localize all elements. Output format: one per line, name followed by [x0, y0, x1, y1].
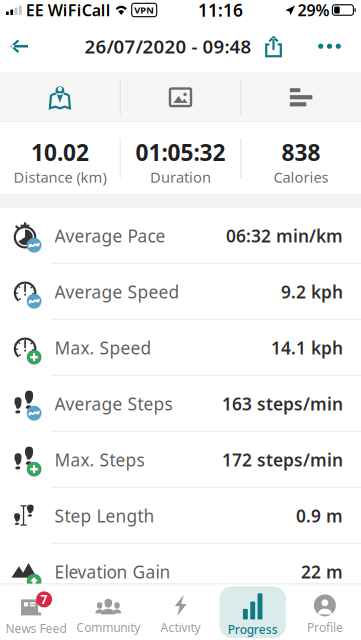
staticText: 22 m	[301, 560, 343, 583]
staticText: EE WiFiCall	[26, 0, 111, 21]
staticText: Activity	[160, 619, 200, 635]
staticText: Max. Steps	[54, 448, 144, 471]
button[interactable]: Step Length	[0, 488, 361, 544]
button[interactable]: Average Speed	[0, 264, 361, 320]
button[interactable]: Max. Steps	[0, 432, 361, 488]
button[interactable]: Map	[0, 73, 120, 121]
staticText: Community	[76, 619, 140, 635]
staticText: 26/07/2020 - 09:48	[84, 34, 251, 59]
staticText: Duration	[150, 167, 211, 187]
button[interactable]: Average Steps	[0, 376, 361, 432]
staticText: Elevation Gain	[54, 560, 170, 583]
staticText: 10.02	[31, 137, 89, 167]
staticText: Profile	[307, 619, 343, 635]
button[interactable]: Splits	[241, 73, 361, 121]
staticText: 7	[41, 591, 48, 607]
staticText: 14.1 kph	[271, 336, 343, 359]
staticText: 11:16	[198, 0, 243, 21]
staticText: Max. Speed	[54, 336, 151, 359]
staticText: Average Pace	[54, 224, 165, 247]
button[interactable]: Photos	[121, 73, 240, 121]
staticText: 01:05:32	[135, 137, 225, 167]
button[interactable]: More	[309, 24, 361, 68]
button[interactable]: Activity	[144, 584, 217, 640]
staticText: 9.2 kph	[281, 280, 343, 303]
staticText: 163 steps/min	[222, 392, 343, 415]
staticText: 06:32 min/km	[226, 224, 343, 247]
staticText: Average Steps	[54, 392, 172, 415]
staticText: 29%	[297, 0, 329, 21]
button[interactable]: Share	[264, 24, 309, 68]
button[interactable]: Max. Speed	[0, 320, 361, 376]
staticText: Progress	[228, 621, 278, 637]
staticText: VPN	[134, 4, 154, 16]
button[interactable]: Average Pace	[0, 208, 361, 264]
button[interactable]: Profile	[289, 584, 361, 640]
staticText: News Feed	[6, 620, 67, 636]
staticText: Step Length	[54, 504, 154, 527]
button[interactable]: Progress	[217, 584, 289, 640]
staticText: 0.9 m	[296, 504, 343, 527]
staticText: Calories	[274, 167, 329, 187]
button[interactable]: 7	[0, 584, 72, 640]
button[interactable]: Elevation Gain	[0, 544, 361, 600]
staticText: 838	[282, 137, 321, 167]
button[interactable]: Community	[72, 584, 144, 640]
staticText: Average Speed	[54, 280, 179, 303]
staticText: Distance (km)	[13, 167, 106, 187]
button[interactable]: Back	[0, 24, 72, 68]
staticText: 172 steps/min	[222, 448, 343, 471]
